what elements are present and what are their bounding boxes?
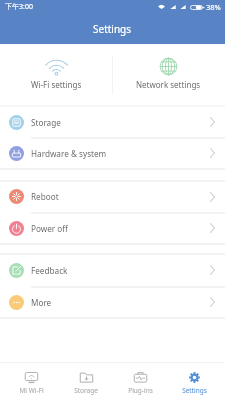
button[interactable]: Reboot (0, 181, 225, 212)
staticText: Power off (31, 223, 68, 234)
staticText: Settings (182, 386, 207, 395)
staticText: Hardware & system (31, 148, 107, 159)
staticText: Storage (74, 386, 98, 395)
button[interactable]: Network settings (112, 44, 225, 105)
button[interactable]: Storage (59, 363, 113, 400)
staticText: 38% (206, 2, 221, 12)
staticText: Mi Wi-Fi (19, 386, 44, 395)
button[interactable]: Mi Wi-Fi (4, 363, 59, 400)
staticText: Settings (93, 22, 132, 36)
button[interactable]: Hardware & system (0, 138, 225, 168)
staticText: Wi-Fi settings (31, 79, 82, 90)
button[interactable]: Storage (0, 107, 225, 137)
staticText: Reboot (31, 191, 59, 202)
staticText: 下午3:00 (5, 2, 33, 12)
staticText: Storage (31, 117, 61, 128)
button[interactable]: Feedback (0, 254, 225, 286)
staticText: Network settings (136, 79, 201, 90)
staticText: Feedback (31, 265, 68, 276)
button[interactable]: Settings (167, 363, 221, 400)
button[interactable]: More (0, 287, 225, 317)
button[interactable]: Wi-Fi settings (0, 44, 112, 105)
staticText: Plug-ins (128, 386, 153, 395)
button[interactable]: Power off (0, 213, 225, 243)
staticText: More (31, 297, 52, 308)
button[interactable]: Plug-ins (113, 363, 167, 400)
